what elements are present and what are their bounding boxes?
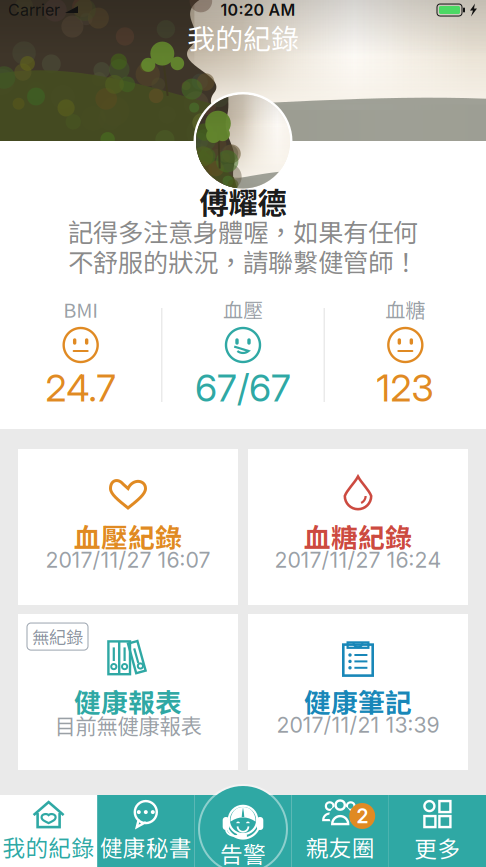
button[interactable]: 親友圈 <box>292 795 389 867</box>
button[interactable]: BMI <box>0 299 161 411</box>
staticText: 更多 <box>414 831 460 864</box>
button[interactable]: 健康筆記 <box>248 614 468 770</box>
staticText: 健康筆記 <box>304 682 412 720</box>
button[interactable]: 血壓紀錄 <box>18 449 238 605</box>
button[interactable]: 我的紀錄 <box>0 20 486 54</box>
staticText: 2017/11/27 16:07 <box>45 547 210 573</box>
staticText: 親友圈 <box>306 830 375 863</box>
staticText: 我的紀錄 <box>3 830 95 863</box>
staticText: 我的紀錄 <box>187 17 299 57</box>
staticText: 記得多注意身體喔，如果有任何 <box>68 213 418 249</box>
staticText: 67/67 <box>195 365 291 411</box>
staticText: 123 <box>376 365 434 411</box>
staticText: 不舒服的狀況，請聯繫健管師！ <box>68 243 418 279</box>
staticText: Carrier <box>8 0 60 20</box>
staticText: 2 <box>356 804 368 828</box>
staticText: 2017/11/21 13:39 <box>276 712 439 738</box>
button[interactable]: 健康秘書 <box>97 795 194 867</box>
staticText: 告警 <box>220 837 266 867</box>
staticText: 24.7 <box>45 365 116 411</box>
staticText: 無紀錄 <box>32 624 83 649</box>
button[interactable]: 血糖紀錄 <box>248 449 468 605</box>
button[interactable]: 血壓 <box>162 299 324 411</box>
staticText: 血壓 <box>223 294 263 323</box>
staticText: 健康秘書 <box>100 830 192 863</box>
staticText: 血糖紀錄 <box>304 517 412 555</box>
button[interactable]: 更多 <box>389 795 486 867</box>
staticText: 血壓紀錄 <box>74 517 182 555</box>
staticText: 傅耀德 <box>199 180 286 222</box>
button[interactable]: 我的紀錄 <box>0 795 97 867</box>
staticText: 目前無健康報表 <box>54 710 201 740</box>
staticText: 血糖 <box>385 294 425 323</box>
button[interactable]: 健康報表 <box>18 614 238 770</box>
staticText: BMI <box>63 294 98 323</box>
staticText: 2017/11/27 16:24 <box>274 547 441 573</box>
staticText: 健康報表 <box>74 682 182 720</box>
button[interactable]: 告警 <box>198 784 288 867</box>
button[interactable]: 血糖 <box>325 299 486 411</box>
staticText: 10:20 AM <box>220 0 295 20</box>
